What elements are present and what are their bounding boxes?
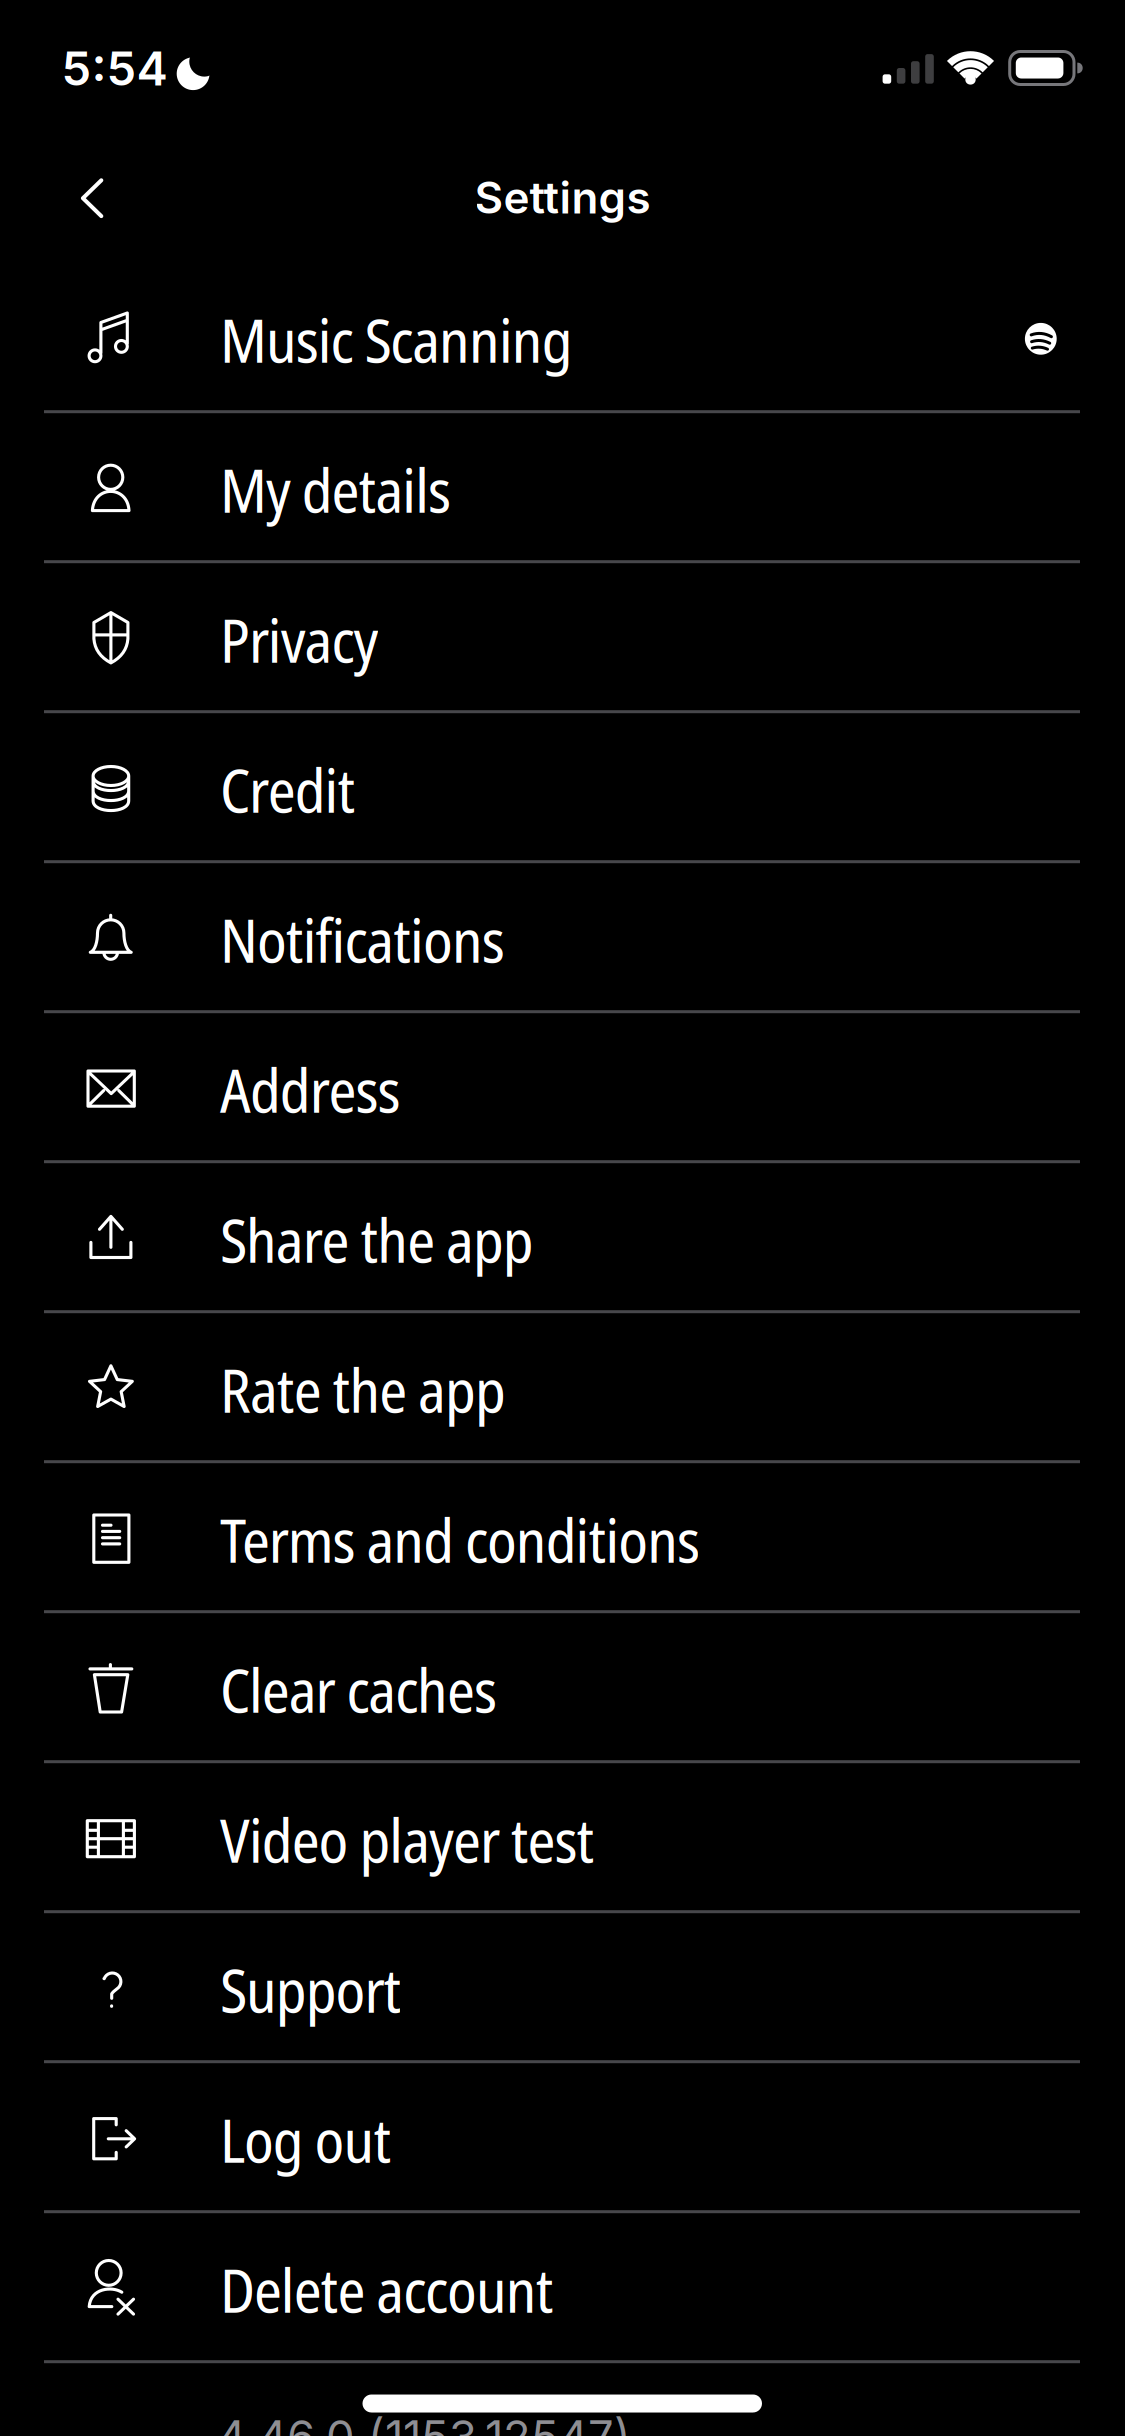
staticText: Video player test [220, 1798, 594, 1880]
button[interactable]: Address [0, 1012, 1125, 1162]
staticText: Music Scanning [220, 298, 573, 380]
button[interactable]: Terms and conditions [0, 1462, 1125, 1612]
staticText: Terms and conditions [220, 1498, 700, 1580]
button[interactable]: Delete account [0, 2212, 1125, 2362]
button[interactable]: Credit [0, 712, 1125, 862]
staticText: Settings [474, 171, 650, 224]
button[interactable]: Music Scanning [0, 262, 1125, 412]
staticText: Support [220, 1948, 401, 2030]
button[interactable]: Video player test [0, 1762, 1125, 1912]
button[interactable]: Log out [0, 2062, 1125, 2212]
button[interactable]: Notifications [0, 862, 1125, 1012]
button[interactable]: Privacy [0, 562, 1125, 712]
staticText: Delete account [220, 2248, 554, 2330]
button[interactable]: Clear caches [0, 1612, 1125, 1762]
button[interactable]: Back [53, 160, 163, 235]
staticText: 5:54 [61, 40, 167, 97]
staticText: Clear caches [220, 1648, 497, 1730]
staticText: 4.46.0 (1153.12547) [217, 2409, 631, 2436]
button[interactable]: Share the app [0, 1162, 1125, 1312]
staticText: Share the app [220, 1198, 534, 1280]
button[interactable]: Support [0, 1912, 1125, 2062]
staticText: Rate the app [220, 1348, 506, 1430]
staticText: Credit [220, 748, 355, 830]
staticText: Notifications [220, 898, 505, 980]
button[interactable]: Rate the app [0, 1312, 1125, 1462]
staticText: My details [220, 448, 451, 530]
staticText: Log out [220, 2098, 391, 2180]
staticText: Privacy [220, 598, 378, 680]
button[interactable]: My details [0, 412, 1125, 562]
staticText: Address [220, 1048, 400, 1130]
